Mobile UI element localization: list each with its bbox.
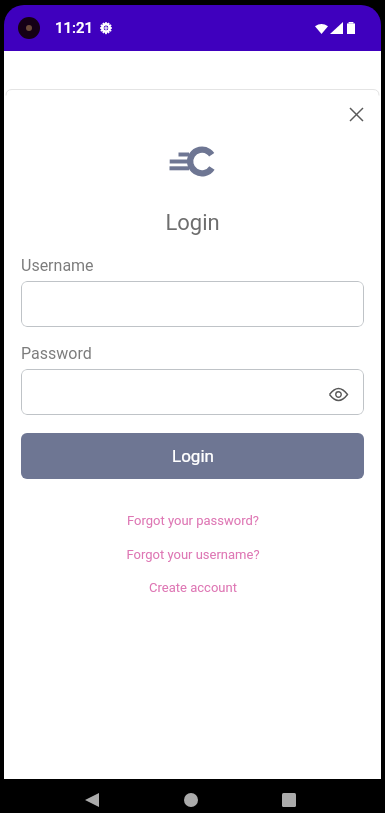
- staticText: Forgot your password?: [127, 513, 259, 528]
- staticText: Login: [6, 210, 379, 236]
- staticText: Forgot your username?: [126, 547, 260, 562]
- button[interactable]: [21, 281, 364, 327]
- button[interactable]: Show password: [324, 380, 352, 408]
- staticText: Login: [172, 446, 214, 466]
- button[interactable]: Back: [77, 785, 107, 813]
- button[interactable]: Forgot your username?: [21, 547, 364, 562]
- button[interactable]: Create account: [21, 580, 364, 595]
- button[interactable]: Recents: [274, 785, 304, 813]
- staticText: Username: [21, 256, 94, 275]
- button[interactable]: Home: [176, 785, 206, 813]
- button[interactable]: Close: [341, 99, 371, 129]
- staticText: Create account: [149, 580, 237, 595]
- staticText: 11:21: [55, 19, 94, 37]
- staticText: Password: [21, 344, 92, 363]
- button[interactable]: Login: [21, 433, 364, 479]
- button[interactable]: Forgot your password?: [21, 513, 364, 528]
